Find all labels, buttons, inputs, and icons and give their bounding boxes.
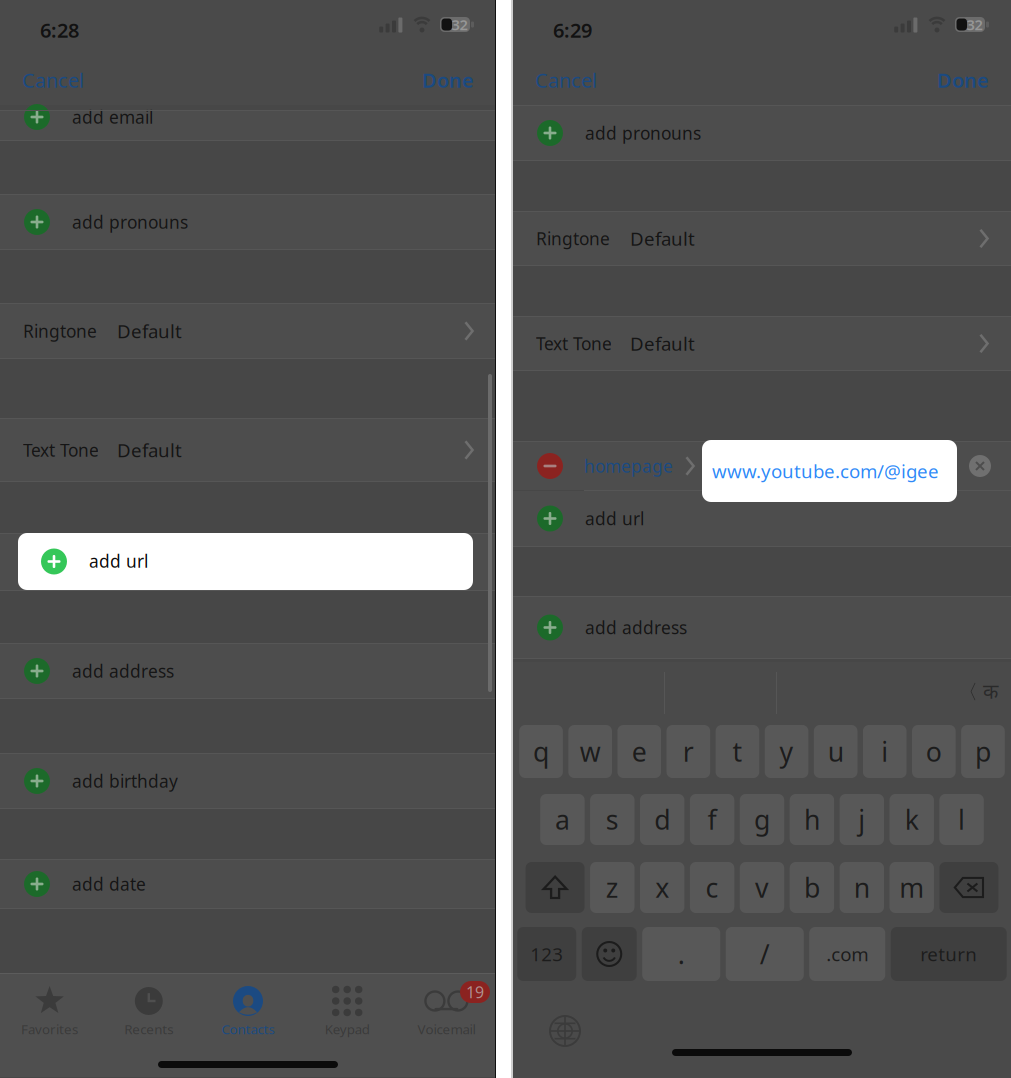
staticText: m bbox=[899, 870, 924, 905]
button[interactable]: Voicemail bbox=[397, 979, 496, 1041]
staticText: Ringtone bbox=[23, 319, 97, 342]
button[interactable]: a bbox=[540, 794, 585, 845]
staticText: Text Tone bbox=[23, 438, 99, 461]
button[interactable]: add url bbox=[18, 533, 473, 590]
button[interactable]: y bbox=[765, 725, 808, 778]
staticText: Text Tone bbox=[536, 332, 612, 355]
button[interactable]: d bbox=[640, 794, 684, 845]
button[interactable]: l bbox=[939, 794, 984, 845]
staticText: Recents bbox=[124, 1020, 173, 1038]
button[interactable]: v bbox=[740, 862, 784, 913]
button[interactable]: add address bbox=[0, 644, 496, 698]
button[interactable]: w bbox=[568, 725, 612, 778]
button[interactable]: Cancel bbox=[535, 68, 625, 92]
staticText: add email bbox=[72, 105, 153, 128]
button[interactable]: add address bbox=[513, 597, 1011, 658]
button[interactable]: add pronouns bbox=[0, 195, 496, 249]
staticText: 6:29 bbox=[553, 17, 592, 43]
staticText: Default bbox=[117, 319, 182, 343]
button[interactable]: Ringtone bbox=[0, 304, 496, 358]
button[interactable]: Ringtone bbox=[513, 212, 1011, 265]
button[interactable]: Recents bbox=[99, 979, 198, 1041]
staticText: h bbox=[804, 802, 820, 837]
staticText: t bbox=[732, 734, 742, 769]
button[interactable]: Delete bbox=[939, 862, 998, 913]
button[interactable]: t bbox=[716, 725, 759, 778]
staticText: add pronouns bbox=[585, 121, 701, 144]
staticText: Default bbox=[630, 331, 695, 356]
button[interactable]: / bbox=[726, 927, 804, 981]
button[interactable]: add email bbox=[0, 110, 496, 141]
button[interactable]: s bbox=[590, 794, 634, 845]
button[interactable]: Text Tone bbox=[513, 317, 1011, 370]
staticText: y bbox=[779, 734, 793, 769]
button[interactable]: Favorites bbox=[0, 979, 99, 1041]
staticText: add address bbox=[72, 659, 174, 682]
button[interactable]: add date bbox=[0, 860, 496, 908]
button[interactable]: Text Tone bbox=[0, 419, 496, 481]
button[interactable]: z bbox=[590, 862, 634, 913]
button[interactable]: Emoji bbox=[582, 927, 637, 981]
button[interactable]: k bbox=[889, 794, 934, 845]
staticText: .com bbox=[826, 942, 868, 966]
button[interactable]: f bbox=[690, 794, 734, 845]
button[interactable]: o bbox=[912, 725, 956, 778]
button[interactable]: h bbox=[790, 794, 834, 845]
button[interactable]: add url bbox=[0, 534, 496, 590]
button[interactable]: Contacts bbox=[198, 979, 298, 1041]
staticText: add url bbox=[72, 550, 131, 573]
button[interactable]: Switch keyboard bbox=[550, 1016, 580, 1046]
button[interactable]: b bbox=[790, 862, 834, 913]
staticText: Default bbox=[630, 226, 695, 251]
staticText: f bbox=[708, 802, 717, 837]
button[interactable]: add pronouns bbox=[513, 106, 1011, 160]
button[interactable]: e bbox=[617, 725, 661, 778]
button[interactable]: g bbox=[740, 794, 784, 845]
staticText: z bbox=[606, 870, 619, 905]
button[interactable]: .com bbox=[809, 927, 885, 981]
staticText: . bbox=[678, 936, 685, 972]
button[interactable]: n bbox=[840, 862, 884, 913]
staticText: add birthday bbox=[72, 769, 178, 792]
button[interactable]: www.youtube.com/@igee bbox=[702, 440, 957, 502]
staticText: l bbox=[958, 802, 965, 837]
button[interactable]: 123 bbox=[517, 927, 576, 981]
staticText: add date bbox=[72, 872, 146, 895]
button[interactable]: j bbox=[840, 794, 884, 845]
button[interactable]: Done bbox=[901, 68, 989, 92]
staticText: 19 bbox=[466, 981, 484, 1003]
button[interactable]: m bbox=[889, 862, 934, 913]
button[interactable]: Shift bbox=[526, 862, 585, 913]
button[interactable]: c bbox=[690, 862, 734, 913]
staticText: Done bbox=[937, 67, 989, 93]
button[interactable]: p bbox=[961, 725, 1005, 778]
staticText: Contacts bbox=[221, 1020, 274, 1038]
button[interactable]: return bbox=[891, 927, 1007, 981]
staticText: o bbox=[926, 734, 942, 769]
staticText: c bbox=[706, 870, 719, 905]
staticText: Done bbox=[422, 67, 474, 93]
button[interactable]: Done bbox=[386, 68, 474, 92]
staticText: return bbox=[920, 942, 977, 966]
staticText: Favorites bbox=[21, 1020, 78, 1038]
button[interactable]: i bbox=[863, 725, 907, 778]
button[interactable]: q bbox=[519, 725, 563, 778]
staticText: Default bbox=[117, 438, 182, 462]
staticText: Cancel bbox=[22, 67, 84, 93]
staticText: q bbox=[533, 734, 549, 769]
button[interactable]: x bbox=[640, 862, 684, 913]
staticText: j bbox=[858, 802, 865, 837]
staticText: g bbox=[754, 802, 770, 837]
button[interactable]: homepage bbox=[513, 442, 1011, 490]
staticText: add url bbox=[89, 549, 148, 572]
button[interactable]: Cancel bbox=[22, 68, 112, 92]
button[interactable]: add birthday bbox=[0, 754, 496, 808]
button[interactable]: u bbox=[814, 725, 857, 778]
staticText: homepage bbox=[584, 454, 673, 477]
staticText: w bbox=[580, 734, 601, 769]
button[interactable]: add url bbox=[513, 491, 1011, 546]
button[interactable]: r bbox=[666, 725, 710, 778]
staticText: i bbox=[881, 734, 888, 769]
button[interactable]: Keypad bbox=[298, 979, 397, 1041]
